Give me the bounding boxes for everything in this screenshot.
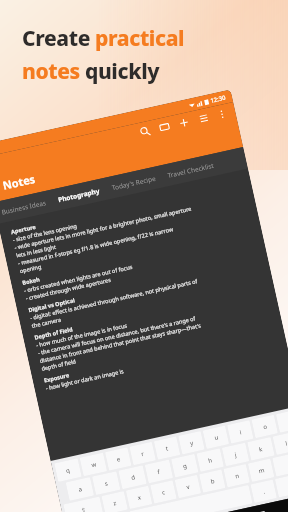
staticText: q [65,466,71,475]
staticText: l [285,439,288,448]
button[interactable]: Recent apps [254,505,271,512]
button[interactable]: o [251,415,278,438]
button[interactable]: Photography [57,186,101,204]
staticText: e [116,455,122,464]
staticText: Digital vs Optical [28,296,76,314]
staticText: f [157,468,161,476]
button[interactable]: c [150,480,177,504]
button[interactable]: v [175,475,201,498]
staticText: v [186,483,191,491]
staticText: - wide aperture lets in more light for a… [14,205,192,252]
staticText: - measured in f-stops eg f/1.8 is wide o… [17,225,174,267]
staticText: - the camera will focus on one distance,… [37,314,197,357]
staticText: h [207,456,213,465]
staticText: Exposure [43,371,70,384]
staticText: n [234,472,240,480]
staticText: o [262,422,268,431]
button[interactable]: z [101,491,128,512]
button[interactable]: Add note [176,115,192,130]
staticText: Today's Recipe [111,174,157,192]
button[interactable]: h [196,448,224,472]
button[interactable]: q [54,458,82,482]
staticText: distance in front and behind that point … [39,321,202,365]
button[interactable]: Today's Recipe [111,174,157,192]
staticText: d [130,473,136,482]
staticText: - how much of the image is in focus [35,321,128,349]
staticText: ⇧ [80,505,88,512]
staticText: i [239,428,243,436]
staticText: - digital: effect is achieved through so… [29,277,199,322]
button[interactable]: Insert image [157,119,172,135]
staticText: lets in less light [15,243,57,260]
button[interactable]: ⇧ [63,496,103,512]
staticText: c [161,488,166,497]
button[interactable]: l [273,431,288,455]
button[interactable]: d [118,465,147,489]
staticText: u [214,433,219,442]
staticText: Create practical [22,24,185,53]
button[interactable]: Business Ideas [1,198,47,217]
staticText: x [137,493,142,502]
button[interactable]: j [222,443,249,466]
button[interactable]: t [154,436,180,460]
staticText: opening [19,263,42,275]
staticText: 12:30 [210,94,227,105]
staticText: depth of field [41,357,77,373]
button[interactable]: f [145,459,173,483]
staticText: Travel Checklist [167,161,215,180]
button[interactable]: More options [214,106,230,122]
staticText: - how light or dark an image is [45,367,125,392]
staticText: r [140,450,145,458]
staticText: y [189,439,195,447]
button[interactable]: s [92,471,120,495]
button[interactable]: Search [137,124,153,139]
staticText: Business Ideas [1,198,47,217]
staticText: m [258,466,265,475]
staticText: notes quickly [22,57,160,86]
button[interactable]: k [247,437,275,461]
button[interactable]: ↵ [275,471,288,498]
button[interactable] [129,485,252,512]
button[interactable]: i [227,420,254,444]
button[interactable]: a [66,477,94,501]
staticText: . [262,487,266,496]
staticText: s [104,479,109,488]
button[interactable]: w [80,453,107,476]
staticText: Depth of Field [34,325,73,342]
staticText: - created through wide apertures [25,276,112,302]
staticText: a [78,485,83,494]
staticText: b [210,477,216,486]
button[interactable]: e [105,447,132,471]
staticText: - orbs created when lights are out of fo… [23,263,133,295]
staticText: Bokeh [21,275,41,287]
staticText: j [234,451,237,459]
button[interactable]: . [250,479,277,503]
button[interactable]: r [129,442,156,465]
button[interactable]: u [203,425,229,449]
button[interactable]: ⌫ [272,450,288,477]
button[interactable]: Travel Checklist [167,161,215,180]
staticText: - size of the lens opening [12,222,78,244]
staticText: z [112,499,117,507]
staticText: the camera [31,316,62,330]
button[interactable]: x [126,486,152,509]
button[interactable]: p [276,409,288,433]
staticText: Aperture [10,223,37,236]
staticText: w [91,460,97,469]
staticText: g [182,462,188,470]
staticText: t [165,444,169,453]
button[interactable]: g [171,454,198,477]
staticText: k [258,445,264,454]
button[interactable]: m [248,458,274,482]
button[interactable]: b [199,469,226,493]
staticText: Photography [57,186,101,204]
button[interactable]: y [178,431,205,454]
button[interactable]: n [223,464,250,487]
button[interactable]: Checklist [196,111,211,126]
staticText: Notes [1,171,37,193]
